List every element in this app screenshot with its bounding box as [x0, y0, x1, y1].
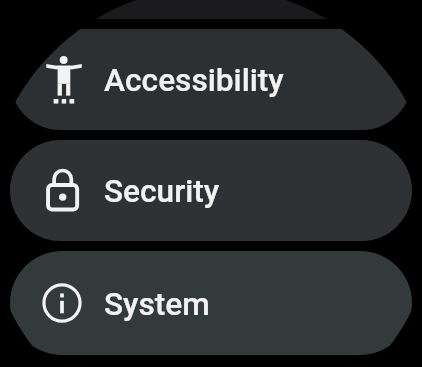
staticText: Accessibility: [104, 62, 284, 99]
button[interactable]: [10, 0, 412, 19]
button[interactable]: Security: [10, 140, 412, 241]
staticText: System: [104, 286, 210, 323]
button[interactable]: Accessibility: [10, 29, 412, 130]
staticText: Security: [104, 173, 220, 210]
button[interactable]: System: [10, 251, 412, 355]
